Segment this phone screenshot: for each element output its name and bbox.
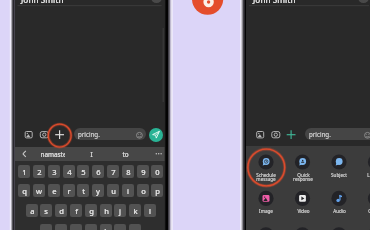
staticText: b <box>104 226 109 230</box>
button[interactable]: n <box>114 224 126 230</box>
staticText: h <box>104 206 109 216</box>
button[interactable]: Show more attachment options <box>52 127 67 142</box>
button[interactable]: g <box>85 204 97 217</box>
button[interactable]: 3 <box>48 165 60 178</box>
button[interactable]: 8 <box>122 165 134 178</box>
staticText: Audio <box>333 208 346 214</box>
staticText: g <box>89 206 94 216</box>
staticText: f <box>75 206 78 216</box>
staticText: p <box>155 186 160 196</box>
button[interactable]: l <box>144 204 156 217</box>
button[interactable]: Camera <box>269 127 284 142</box>
button[interactable]: Contact avatar <box>151 0 162 3</box>
button[interactable]: Send message <box>149 128 163 142</box>
button[interactable]: v <box>85 224 97 230</box>
button[interactable]: Quick response <box>288 153 318 183</box>
staticText: John Smith <box>253 0 296 5</box>
button[interactable]: 2 <box>33 165 45 178</box>
button[interactable]: 4 <box>63 165 75 178</box>
button[interactable]: Audio <box>324 189 354 219</box>
staticText: e <box>52 186 57 196</box>
button[interactable]: t <box>77 184 89 197</box>
button[interactable]: q <box>18 184 30 197</box>
button[interactable]: p <box>151 184 163 197</box>
staticText: Location <box>367 172 370 178</box>
button[interactable]: Image <box>251 189 281 219</box>
staticText: j <box>119 206 121 216</box>
button[interactable]: c <box>70 224 82 230</box>
button[interactable]: More suggestions <box>150 147 164 160</box>
staticText: a <box>30 206 35 216</box>
staticText: 9 <box>141 167 146 177</box>
staticText: I <box>90 150 93 159</box>
button[interactable]: John Smith <box>21 0 64 6</box>
staticText: 8 <box>126 167 131 177</box>
button[interactable]: h <box>100 204 112 217</box>
button[interactable]: i <box>122 184 134 197</box>
button[interactable]: 1 <box>18 165 30 178</box>
button[interactable]: j <box>114 204 126 217</box>
button[interactable]: Files <box>251 226 281 230</box>
button[interactable]: Video <box>288 189 318 219</box>
staticText: y <box>96 186 100 196</box>
button[interactable]: d <box>55 204 67 217</box>
button[interactable]: 5 <box>77 165 89 178</box>
button[interactable]: I <box>86 147 96 161</box>
button[interactable]: r <box>63 184 75 197</box>
button[interactable]: Show more attachment options <box>284 127 299 142</box>
button[interactable]: 0 <box>151 165 163 178</box>
button[interactable]: Contact avatar <box>358 0 369 3</box>
button[interactable]: 9 <box>137 165 149 178</box>
button[interactable]: z <box>40 224 52 230</box>
button[interactable]: Contact <box>361 189 370 219</box>
staticText: 4 <box>67 167 72 177</box>
button[interactable]: x <box>55 224 67 230</box>
staticText: o <box>141 186 146 196</box>
staticText: d <box>59 206 64 216</box>
staticText: to <box>122 150 129 159</box>
staticText: 5 <box>81 167 86 177</box>
staticText: k <box>133 206 138 216</box>
button[interactable]: John Smith <box>253 0 296 6</box>
button[interactable]: u <box>107 184 119 197</box>
button[interactable]: f <box>70 204 82 217</box>
button[interactable]: pricing. <box>305 128 370 140</box>
staticText: pricing. <box>309 130 331 138</box>
staticText: l <box>149 206 151 216</box>
button[interactable]: Sticker <box>324 226 354 230</box>
button[interactable]: a <box>26 204 38 217</box>
button[interactable]: GIF <box>288 226 318 230</box>
button[interactable]: pricing. <box>74 128 146 140</box>
button[interactable]: Schedule message <box>251 153 281 183</box>
button[interactable]: s <box>40 204 52 217</box>
button[interactable]: Camera <box>37 127 52 142</box>
staticText: Subject <box>331 172 347 178</box>
button[interactable]: y <box>92 184 104 197</box>
staticText: q <box>22 186 27 196</box>
staticText: 2 <box>37 167 42 177</box>
staticText: w <box>36 186 42 196</box>
button[interactable]: o <box>137 184 149 197</box>
staticText: 7 <box>111 167 116 177</box>
button[interactable]: namaste <box>40 147 65 161</box>
staticText: s <box>44 206 48 216</box>
button[interactable]: k <box>129 204 141 217</box>
staticText: 1 <box>22 167 27 177</box>
button[interactable]: e <box>48 184 60 197</box>
button[interactable]: Gallery <box>22 127 37 142</box>
button[interactable]: to <box>119 147 131 161</box>
button[interactable]: Gallery <box>253 127 268 142</box>
button[interactable]: b <box>100 224 112 230</box>
button[interactable]: Location <box>361 153 370 183</box>
button[interactable]: m <box>129 224 141 230</box>
staticText: pricing. <box>78 130 100 138</box>
staticText: response <box>293 176 313 182</box>
button[interactable]: Subject <box>324 153 354 183</box>
button[interactable]: 6 <box>92 165 104 178</box>
button[interactable]: w <box>33 184 45 197</box>
staticText: t <box>82 186 85 196</box>
button[interactable]: 7 <box>107 165 119 178</box>
staticText: u <box>111 186 116 196</box>
